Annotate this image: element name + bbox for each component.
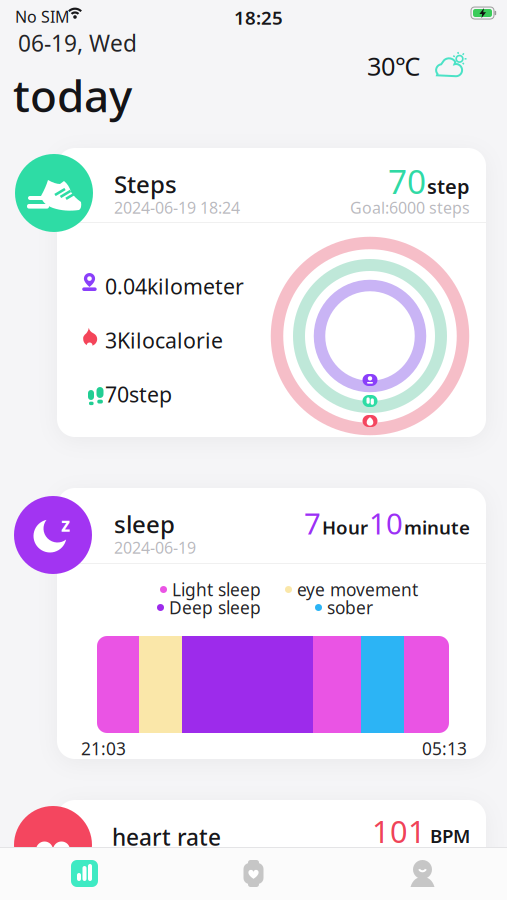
staticText: 7 [304,503,321,542]
staticText: Light sleep [172,578,261,601]
button[interactable]: Weather [367,49,467,83]
staticText: 21:03 [81,737,126,760]
staticText: 06-19, Wed [18,28,137,58]
staticText: 2024-06-19 [114,537,196,558]
staticText: 2024-06-19 18:24 [114,197,240,218]
button[interactable]: heart rate [57,800,486,900]
staticText: heart rate [112,822,221,852]
staticText: 05:13 [422,737,467,760]
button[interactable]: sleep [57,488,486,759]
button[interactable]: Steps [57,148,486,437]
staticText: Steps [114,168,177,200]
staticText: 101 [372,811,426,851]
button[interactable]: Profile [338,847,507,900]
staticText: 18:25 [234,5,283,30]
staticText: 0.04kilometer [105,272,244,300]
staticText: Deep sleep [169,596,261,619]
staticText: step [427,173,470,199]
staticText: No SIM [15,6,70,27]
staticText: Hour [322,515,368,539]
staticText: sleep [114,508,175,540]
staticText: 3Kilocalorie [105,326,223,354]
staticText: eye movement [297,578,418,601]
staticText: 30℃ [367,49,420,83]
staticText: Goal:6000 steps [350,197,470,218]
staticText: z [61,512,70,537]
button[interactable]: Today [0,847,169,900]
staticText: 70step [105,380,172,408]
staticText: 70 [388,159,426,203]
staticText: 10 [369,503,403,542]
staticText: today [13,66,132,124]
button[interactable]: Device [169,847,338,900]
staticText: BPM [430,823,470,848]
staticText: sober [327,596,373,619]
staticText: minute [404,515,470,539]
